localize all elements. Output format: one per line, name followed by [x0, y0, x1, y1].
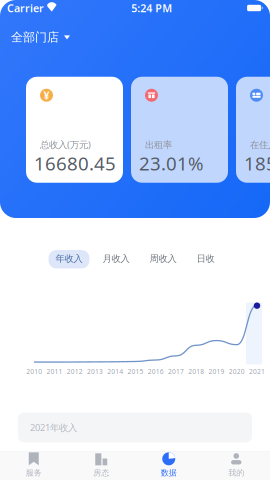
staticText: 2014 — [107, 367, 123, 376]
staticText: 2012 — [67, 367, 83, 376]
button[interactable]: 我的 — [202, 447, 270, 480]
staticText: 年收入 — [55, 253, 82, 264]
staticText: 2019 — [209, 367, 225, 376]
button[interactable]: 月收入 — [95, 250, 136, 268]
staticText: 2021年收入 — [30, 421, 77, 434]
staticText: 2011 — [46, 367, 62, 376]
staticText: 2020 — [229, 367, 245, 376]
staticText: 日收 — [196, 253, 214, 264]
staticText: 我的 — [228, 468, 244, 478]
staticText: 2017 — [168, 367, 184, 376]
staticText: 16680.45 — [34, 151, 116, 176]
staticText: 2010 — [26, 367, 42, 376]
staticText: 总收入(万元) — [40, 138, 91, 151]
staticText: 在住人数 — [250, 139, 270, 151]
staticText: 5:24 PM — [131, 1, 172, 15]
button[interactable]: 服务 — [0, 447, 67, 480]
staticText: 周收入 — [149, 253, 176, 264]
staticText: 数据 — [161, 468, 177, 478]
button[interactable]: 全部门店 — [0, 16, 81, 77]
staticText: 2015 — [127, 367, 143, 376]
staticText: 服务 — [26, 468, 42, 478]
staticText: 23.01% — [139, 151, 204, 176]
staticText: 2018 — [188, 367, 204, 376]
staticText: 月收入 — [102, 253, 129, 264]
staticText: 1850 — [244, 151, 270, 176]
button[interactable]: 年收入 — [48, 250, 89, 268]
button[interactable]: 出租率 — [131, 77, 228, 183]
staticText: 出租率 — [145, 139, 172, 151]
staticText: 全部门店 — [11, 30, 59, 45]
button[interactable]: 房态 — [67, 447, 135, 480]
staticText: 2021 — [249, 367, 265, 376]
button[interactable]: ¥ — [26, 77, 123, 183]
button[interactable]: 数据 — [135, 447, 202, 480]
staticText: ¥ — [43, 88, 49, 102]
staticText: 房态 — [93, 468, 109, 478]
staticText: 2013 — [87, 367, 103, 376]
button[interactable]: 日收 — [189, 250, 221, 268]
button[interactable]: 周收入 — [142, 250, 183, 268]
staticText: 2016 — [148, 367, 164, 376]
staticText: Carrier — [7, 1, 44, 15]
button[interactable]: 在住人数 — [236, 77, 270, 183]
